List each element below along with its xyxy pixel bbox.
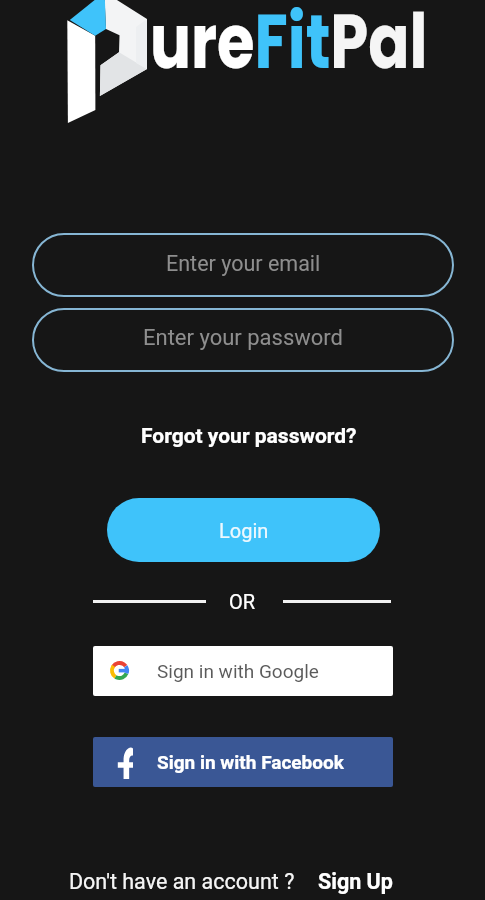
other: Sign in with Facebook bbox=[117, 748, 133, 779]
staticText: OR bbox=[229, 590, 256, 613]
button[interactable]: Sign in with Facebook bbox=[93, 737, 393, 787]
staticText: Sign in with Google bbox=[157, 660, 319, 682]
staticText: ureFitPal bbox=[150, 0, 428, 94]
button[interactable]: Forgot your password? bbox=[133, 418, 365, 455]
button[interactable]: Sign Up bbox=[318, 869, 393, 894]
button[interactable]: Sign in with Google bbox=[93, 646, 393, 696]
button[interactable]: Enter your password bbox=[32, 308, 454, 372]
staticText: Sign in with Facebook bbox=[157, 751, 344, 773]
staticText: Enter your password bbox=[143, 325, 344, 351]
staticText: Login bbox=[219, 519, 269, 542]
button[interactable]: Enter your email bbox=[32, 233, 454, 297]
staticText: Sign Up bbox=[318, 869, 393, 894]
other: Sign in with Google bbox=[110, 661, 129, 680]
staticText: Enter your email bbox=[166, 251, 321, 276]
staticText: Forgot your password? bbox=[141, 424, 357, 449]
button[interactable]: Login bbox=[107, 498, 380, 562]
staticText: Don't have an account ? bbox=[69, 869, 295, 894]
